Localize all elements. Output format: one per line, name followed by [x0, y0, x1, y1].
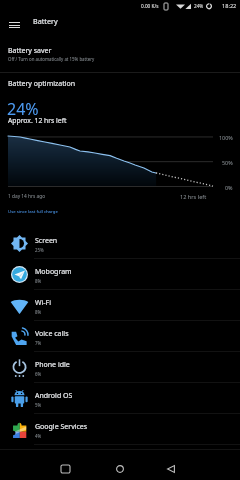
staticText: Screen [35, 236, 58, 246]
staticText: Battery saver [8, 46, 52, 56]
staticText: 1 day 14 hrs ago [8, 193, 46, 200]
button[interactable]: Voice calls [0, 321, 240, 352]
button[interactable]: Phone idle [0, 352, 240, 383]
button[interactable]: Battery optimization [0, 73, 240, 128]
staticText: 4% [35, 433, 42, 439]
staticText: Use since last full charge [8, 208, 58, 214]
staticText: 50% [222, 159, 233, 166]
button[interactable]: Google Services [0, 414, 240, 445]
staticText: 7% [35, 340, 42, 346]
staticText: Android OS [35, 391, 73, 401]
staticText: Approx. 12 hrs left [8, 116, 67, 125]
staticText: 24% [194, 3, 204, 9]
staticText: 24% [7, 98, 39, 120]
staticText: Off / Turn on automatically at 15% batte… [8, 56, 95, 62]
button[interactable]: Mobogram [0, 259, 240, 290]
button[interactable]: Screen [0, 228, 240, 259]
staticText: 8% [35, 309, 42, 315]
staticText: Battery [33, 16, 58, 26]
staticText: 0.00 K/s [141, 3, 159, 9]
staticText: 25% [35, 247, 44, 253]
staticText: 18:22 [222, 2, 237, 10]
staticText: 6% [35, 371, 42, 377]
staticText: Battery optimization [8, 79, 76, 89]
button[interactable]: Android OS [0, 383, 240, 414]
button[interactable]: Use since last full charge [0, 203, 240, 217]
staticText: Mobogram [35, 267, 72, 277]
button[interactable]: More apps [0, 445, 240, 459]
staticText: Phone idle [35, 360, 70, 370]
button[interactable]: Back [157, 460, 185, 478]
button[interactable]: Wi-Fi [0, 290, 240, 321]
button[interactable]: Open navigation menu [1, 12, 27, 38]
staticText: 12 hrs left [180, 193, 207, 201]
staticText: Google Services [35, 422, 88, 432]
staticText: 0% [225, 184, 233, 191]
staticText: 100% [219, 134, 233, 141]
staticText: Voice calls [35, 329, 69, 339]
button[interactable]: Battery saver [0, 40, 240, 72]
button[interactable]: Recent apps [51, 460, 79, 478]
button[interactable]: Home [106, 460, 134, 478]
staticText: 5% [35, 402, 42, 408]
staticText: Wi-Fi [35, 298, 52, 308]
staticText: 8% [35, 278, 42, 284]
